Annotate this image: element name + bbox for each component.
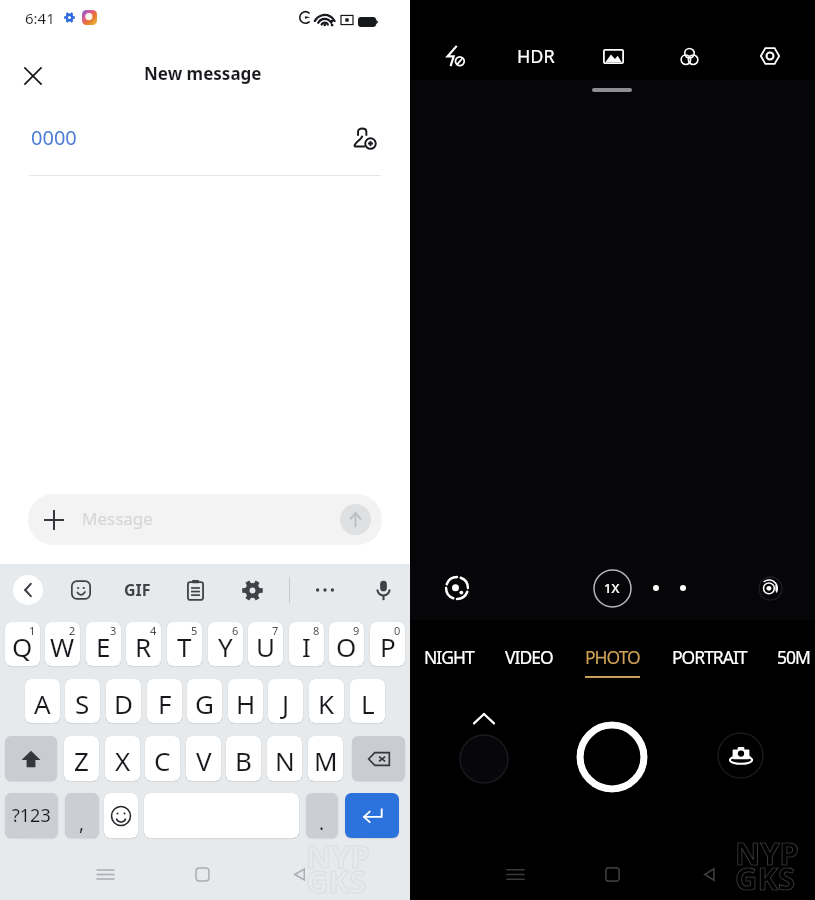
staticText: VIDEO <box>505 645 553 669</box>
staticText: C <box>154 743 171 778</box>
staticText: 4 <box>150 623 157 638</box>
staticText: Message <box>82 507 153 530</box>
button[interactable]: 50M <box>745 639 815 675</box>
button[interactable]: Backspace <box>352 736 405 781</box>
button[interactable]: C <box>145 736 180 781</box>
staticText: GKS <box>735 857 796 899</box>
button[interactable]: VIDEO <box>481 639 577 675</box>
button[interactable]: E <box>86 622 121 666</box>
staticText: 0 <box>394 623 401 638</box>
staticText: 2 <box>69 623 76 638</box>
button[interactable]: Recents <box>495 854 535 894</box>
button[interactable]: W <box>45 622 80 666</box>
button[interactable]: Close <box>13 56 52 95</box>
staticText: Z <box>74 743 89 778</box>
button[interactable]: Settings <box>234 572 270 608</box>
button[interactable]: T <box>167 622 202 666</box>
staticText: 7 <box>272 623 279 638</box>
button[interactable]: Lens scan <box>433 564 481 612</box>
button[interactable]: M <box>308 736 343 781</box>
button[interactable]: Emoji <box>104 793 138 838</box>
staticText: Y <box>218 629 233 664</box>
button[interactable]: X <box>105 736 140 781</box>
button[interactable]: PHOTO <box>564 639 660 675</box>
button[interactable]: More options <box>307 572 343 608</box>
button[interactable]: ?123 <box>5 793 58 838</box>
staticText: P <box>380 629 396 664</box>
staticText: X <box>115 743 131 778</box>
button[interactable]: R <box>126 622 161 666</box>
staticText: T <box>177 629 192 664</box>
button[interactable]: , <box>65 793 99 838</box>
staticText: PHOTO <box>585 645 640 669</box>
button[interactable]: Shift <box>5 736 57 781</box>
staticText: D <box>114 686 133 721</box>
button[interactable]: 1X <box>588 564 636 612</box>
button[interactable]: Q <box>5 622 40 666</box>
button[interactable]: Add contact <box>344 118 384 158</box>
button[interactable]: P <box>370 622 405 666</box>
staticText: NIGHT <box>424 645 474 669</box>
button[interactable]: F <box>147 679 182 723</box>
button[interactable]: V <box>186 736 221 781</box>
button[interactable]: Recents <box>85 854 125 894</box>
button[interactable]: Aspect ratio <box>591 34 635 78</box>
button[interactable]: Settings <box>748 34 792 78</box>
button[interactable]: . <box>306 793 338 838</box>
button[interactable]: Shutter <box>576 721 648 793</box>
staticText: 6:41 <box>25 8 55 28</box>
button[interactable]: O <box>329 622 364 666</box>
button[interactable]: Filters <box>667 34 711 78</box>
staticText: H <box>236 686 256 721</box>
staticText: K <box>318 686 335 721</box>
staticText: G <box>195 686 214 721</box>
staticText: A <box>34 686 51 721</box>
button[interactable]: Home <box>182 854 222 894</box>
button[interactable]: U <box>248 622 283 666</box>
button[interactable]: PORTRAIT <box>661 639 757 675</box>
staticText: GKS <box>306 860 367 900</box>
button[interactable]: Switch camera <box>717 732 764 779</box>
button[interactable]: Stickers <box>63 572 99 608</box>
staticText: O <box>336 629 357 664</box>
button[interactable]: B <box>226 736 261 781</box>
button[interactable]: Y <box>208 622 243 666</box>
button[interactable]: Gallery <box>459 734 509 784</box>
staticText: J <box>282 686 290 721</box>
staticText: ?123 <box>12 803 51 828</box>
staticText: I <box>302 629 311 664</box>
button[interactable]: Back <box>13 575 43 605</box>
button[interactable]: Message <box>28 494 382 545</box>
button[interactable]: J <box>268 679 303 723</box>
staticText: . <box>319 810 325 836</box>
button[interactable]: Enter <box>345 793 399 838</box>
staticText: NYP <box>735 832 799 874</box>
button[interactable]: Clipboard <box>177 572 213 608</box>
button[interactable]: K <box>309 679 344 723</box>
button[interactable]: H <box>228 679 263 723</box>
button[interactable]: Z <box>64 736 99 781</box>
staticText: GIF <box>124 579 151 601</box>
button[interactable]: Back <box>279 854 319 894</box>
button[interactable]: L <box>350 679 385 723</box>
button[interactable]: I <box>289 622 324 666</box>
staticText: W <box>50 629 75 664</box>
staticText: 1X <box>604 579 620 597</box>
button[interactable]: NIGHT <box>401 639 497 675</box>
button[interactable]: S <box>65 679 100 723</box>
button[interactable]: Back <box>689 854 729 894</box>
button[interactable]: D <box>106 679 141 723</box>
button[interactable]: G <box>187 679 222 723</box>
button[interactable]: Beauty mode <box>746 564 794 612</box>
button[interactable]: GIF <box>115 572 159 608</box>
button[interactable]: HDR <box>506 41 566 71</box>
button[interactable]: Home <box>592 854 632 894</box>
staticText: L <box>361 686 375 721</box>
button[interactable]: Flash off <box>433 34 477 78</box>
button[interactable]: N <box>267 736 302 781</box>
button[interactable]: Send <box>340 504 371 535</box>
button[interactable]: A <box>25 679 60 723</box>
staticText: M <box>314 743 338 778</box>
button[interactable]: Voice input <box>365 572 401 608</box>
